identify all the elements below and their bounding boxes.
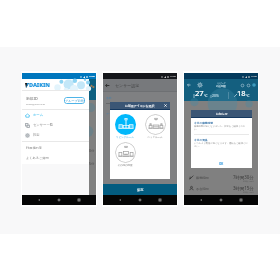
button[interactable]: その他の部屋 (110, 142, 140, 167)
button[interactable]: グループ切替 (64, 97, 85, 104)
button[interactable]: Mode (245, 82, 251, 88)
button[interactable]: Back (117, 197, 123, 203)
button[interactable]: よくあるご質問 (26, 156, 49, 160)
button[interactable]: 利用規約等 (26, 146, 42, 150)
staticText: xxxxx@xxx.co.jp (26, 102, 46, 105)
button[interactable]: OK (191, 160, 252, 168)
staticText: 7時間30分 (233, 174, 254, 180)
button[interactable]: Recents (76, 197, 82, 203)
staticText: ℃ (246, 93, 250, 98)
staticText: 12:30 (89, 75, 95, 78)
staticText: 3時間15分 (233, 185, 254, 191)
staticText: OK (219, 162, 224, 166)
staticText: 前日比 +30分 (243, 191, 254, 193)
button[interactable]: Recents (238, 197, 244, 203)
staticText: のお部屋 (216, 85, 226, 88)
staticText: 名称 (106, 96, 112, 100)
staticText: アイコン (106, 112, 118, 116)
staticText: ベッドルーム (147, 136, 163, 139)
button[interactable]: Menu (90, 84, 95, 89)
staticText: いつもより気温が高くなります。運転をご確認ください。 (194, 142, 249, 148)
staticText: 15分 (87, 161, 95, 166)
staticText: 18 (237, 88, 246, 98)
staticText: 新規ID (26, 96, 38, 101)
button[interactable]: Recents (157, 197, 163, 203)
staticText: 今日の稼働時間 (194, 121, 213, 124)
staticText: 12:30 (170, 75, 176, 78)
staticText: センサー設定 (115, 83, 140, 88)
staticText: 12:30 (251, 75, 257, 78)
staticText: 20% (212, 93, 219, 98)
button[interactable]: 稼働時間 (184, 172, 258, 183)
button[interactable]: 不在時間 (184, 183, 258, 194)
staticText: 27 (195, 88, 204, 98)
button[interactable]: 保存 (103, 184, 177, 195)
staticText: センサー一覧 (33, 123, 54, 127)
button[interactable]: Power (239, 82, 245, 88)
button[interactable]: Home (218, 197, 224, 203)
button[interactable]: リビングルーム (110, 114, 140, 139)
staticText: ℃ (204, 93, 208, 98)
staticText: DAIKIN (29, 81, 50, 89)
button[interactable]: ホーム (22, 110, 89, 120)
button[interactable]: Settings (197, 82, 203, 88)
button[interactable]: センサー一覧 (22, 120, 89, 130)
staticText: 今日の気温 (194, 138, 208, 141)
staticText: ホーム (33, 113, 44, 117)
button[interactable]: Back (198, 197, 204, 203)
button[interactable]: 設定 (22, 130, 89, 140)
button[interactable]: Home (137, 197, 143, 203)
staticText: お知らせ (216, 112, 228, 116)
button[interactable]: Back (103, 81, 112, 90)
button[interactable]: Back (36, 197, 42, 203)
button[interactable]: Home (56, 197, 62, 203)
staticText: 不在時間 (196, 187, 209, 191)
button[interactable]: Back (185, 81, 192, 88)
staticText: 30分 (87, 148, 95, 153)
staticText: お部屋アイコンを選択 (125, 104, 155, 108)
staticText: 稼働時間 (196, 176, 209, 180)
staticText: リビングルーム (116, 136, 134, 139)
button[interactable]: Wind (251, 82, 257, 88)
staticText: 稼働時間が短くなりました。設定をご確認ください。 (194, 125, 249, 131)
button[interactable]: Close (164, 104, 167, 107)
staticText: グループ切替 (65, 99, 84, 103)
staticText: 設定 (33, 133, 40, 137)
staticText: リビング (217, 82, 226, 85)
staticText: 保存 (137, 188, 144, 192)
staticText: その他の部屋 (117, 164, 133, 167)
button[interactable]: ベッドルーム (140, 114, 170, 139)
staticText: 前日比 +30分 (243, 180, 254, 182)
